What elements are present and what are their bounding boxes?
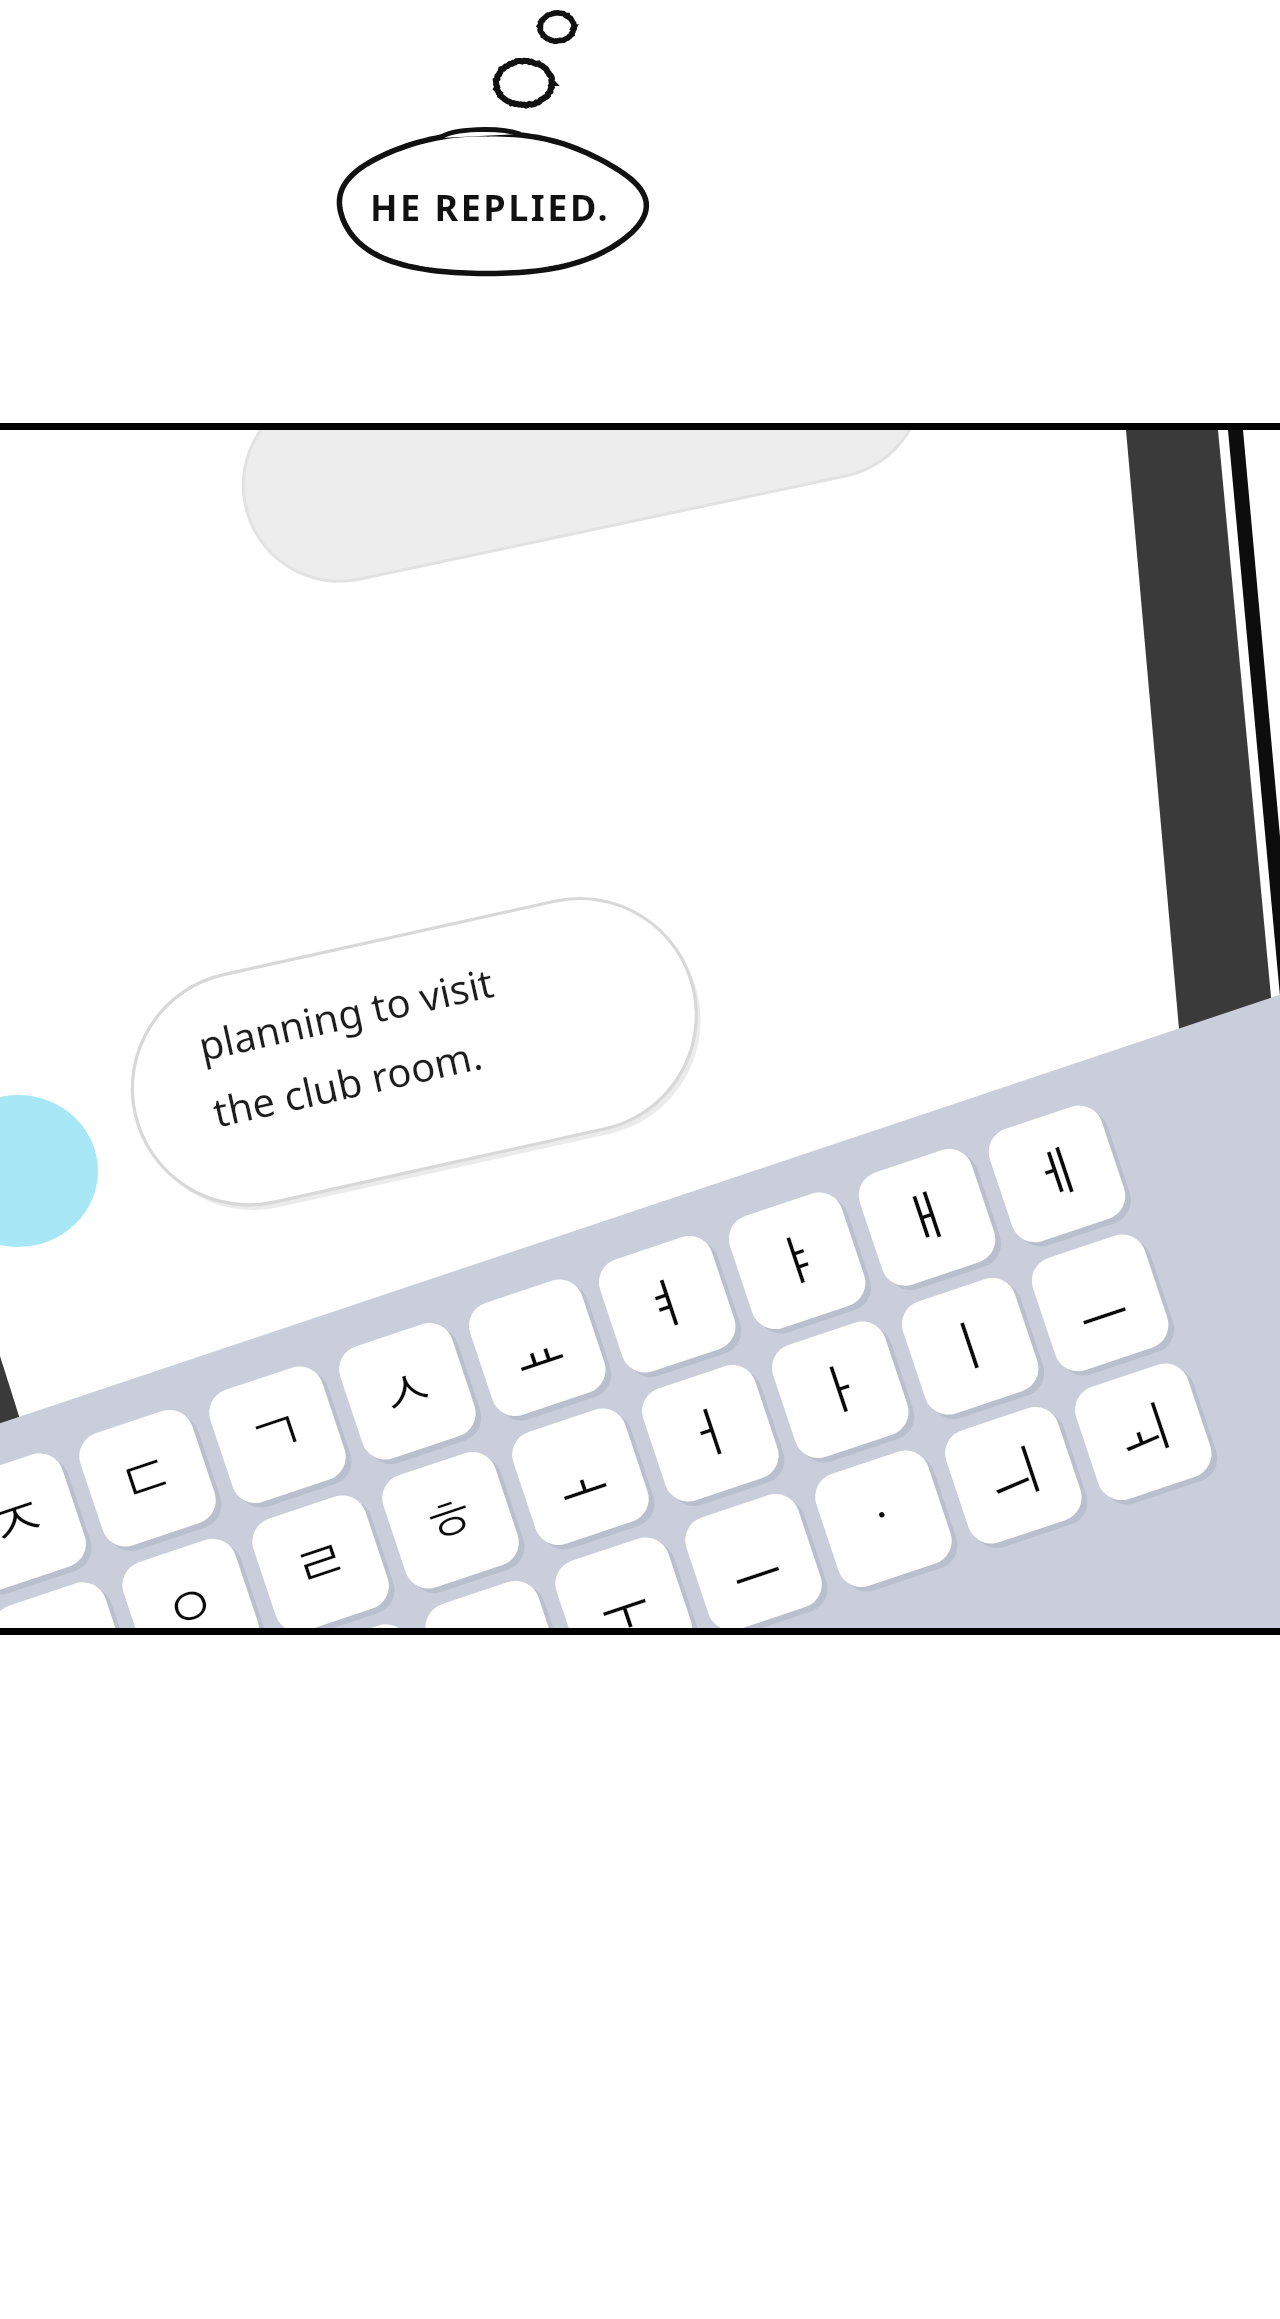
button[interactable]: Comic panel: phone screenshot (0, 0, 1280, 2319)
other: Comic panel: phone screenshot (0, 0, 1280, 2319)
